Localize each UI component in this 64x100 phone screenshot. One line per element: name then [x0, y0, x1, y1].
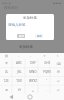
button[interactable]: GHI — [40, 59, 53, 67]
staticText: ， — [17, 54, 20, 58]
staticText: ？ — [43, 54, 46, 58]
staticText: PQRS — [43, 70, 51, 74]
button[interactable]: 取消 — [17, 34, 25, 38]
button[interactable]: 123 — [0, 76, 12, 85]
staticText: TUV — [16, 79, 22, 83]
staticText: 确定 — [37, 35, 42, 38]
button[interactable]: ！ — [51, 53, 64, 59]
staticText: ▬▬ ▲ — [2, 1, 11, 5]
staticText: ▬▬▬ — [53, 1, 62, 4]
button[interactable]: PQRS — [40, 67, 53, 76]
button[interactable]: ？ — [38, 53, 51, 59]
staticText: 取消 — [19, 35, 24, 38]
staticText: ， — [45, 88, 48, 92]
staticText: ’ — [46, 79, 47, 83]
staticText: WXYZ — [29, 79, 37, 83]
staticText: 123 — [3, 79, 9, 83]
staticText: 请输入标签 — [8, 23, 26, 27]
button[interactable]: ↵ — [53, 85, 64, 94]
button[interactable]: TUV — [12, 76, 26, 85]
button[interactable]: 中 — [0, 59, 12, 67]
button[interactable]: 拼 — [0, 53, 12, 59]
staticText: MNO — [29, 70, 37, 74]
staticText: 中 — [5, 61, 8, 65]
button[interactable]: 符 — [53, 67, 64, 76]
button[interactable]: ↵ — [53, 76, 64, 85]
button[interactable]: 确定 — [35, 34, 43, 38]
staticText: 拼 — [5, 54, 8, 58]
staticText: 符 — [57, 70, 60, 74]
button[interactable]: ABC — [12, 59, 26, 67]
button[interactable]: JKL — [12, 67, 26, 76]
staticText: ABC — [16, 61, 22, 65]
staticText: GHI — [44, 61, 50, 65]
staticText: ␣ — [32, 88, 34, 91]
button[interactable]: ⚙ — [0, 85, 12, 94]
button[interactable]: ⌫ — [53, 59, 64, 67]
staticText: 添加标签 — [19, 45, 33, 49]
button[interactable]: 英 — [0, 67, 12, 76]
staticText: 。 — [30, 54, 33, 58]
button[interactable]: DEF — [26, 59, 40, 67]
staticText: DEF — [30, 61, 36, 65]
button[interactable]: ␣ — [26, 85, 40, 94]
button[interactable]: ’ — [40, 76, 53, 85]
staticText: ⚙ — [5, 88, 8, 91]
staticText: 英 — [5, 70, 8, 74]
staticText: ⌫ — [56, 62, 61, 65]
staticText: ！ — [56, 54, 59, 58]
button[interactable]: WXYZ — [26, 76, 40, 85]
staticText: JKL — [17, 70, 22, 74]
staticText: 符 — [18, 88, 21, 92]
button[interactable]: MNO — [26, 67, 40, 76]
staticText: ↵ — [57, 79, 60, 82]
button[interactable]: 符 — [12, 85, 26, 94]
staticText: 添加标签 — [23, 16, 37, 20]
staticText: ↵ — [57, 88, 60, 91]
staticText: 搜索商品 — [4, 6, 18, 10]
